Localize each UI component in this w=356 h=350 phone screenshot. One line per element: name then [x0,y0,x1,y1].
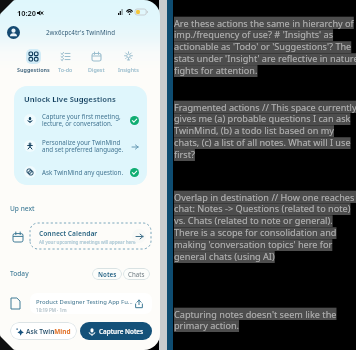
staticText: Unlock Live Suggestions [24,94,116,104]
staticText: Connect Calendar [39,229,98,238]
staticText: 2wx6cpc4tr's TwinMind [46,28,115,36]
button[interactable]: Suggestions [13,49,53,73]
staticText: Suggestions [17,66,50,73]
button[interactable]: Chats [123,268,150,280]
staticText: Ask TwinMind any question. [42,168,127,176]
staticText: To-do [58,66,73,73]
staticText: All your upcoming meetings will appear h… [39,239,136,245]
button[interactable]: Capture your first meeting, lecture, or … [24,109,139,131]
button[interactable]: Profile [7,26,20,39]
staticText: 10:20 [17,8,36,18]
button[interactable]: Product Designer Testing App Fu... [30,293,152,314]
staticText: Ask TwinMind [26,327,71,336]
staticText: 10:19 PM · 1m [36,307,67,313]
button[interactable]: Connect Calendar [30,223,151,249]
button[interactable]: Capture Notes [80,322,152,340]
staticText: Capturing notes doesn't seem like the pr… [174,308,356,332]
staticText: Capture Notes [99,327,144,336]
button[interactable]: Ask TwinMind any question. [24,161,139,183]
button[interactable]: Notes [92,268,122,280]
staticText: Insights [118,66,139,73]
button[interactable]: Digest [76,49,116,73]
staticText: Notes [98,270,117,278]
button[interactable]: Share [134,299,144,309]
button[interactable]: Personalize your TwinMind and set prefer… [24,135,139,157]
staticText: Chats [128,270,145,278]
staticText: Fragmented actions // This space current… [174,101,356,161]
staticText: Today [10,269,29,278]
staticText: Are these actions the same in hierarchy … [174,17,356,77]
button[interactable]: To-do [45,49,85,73]
button[interactable]: Insights [108,49,148,73]
button[interactable]: Ask TwinMind [10,322,77,340]
staticText: Product Designer Testing App Fu... [36,298,133,306]
staticText: Personalize your TwinMind and set prefer… [42,138,127,154]
staticText: Capture your first meeting, lecture, or … [42,112,127,128]
staticText: Digest [88,66,105,73]
staticText: Up next [10,204,35,213]
staticText: Overlap in destination // How one reache… [174,191,356,263]
